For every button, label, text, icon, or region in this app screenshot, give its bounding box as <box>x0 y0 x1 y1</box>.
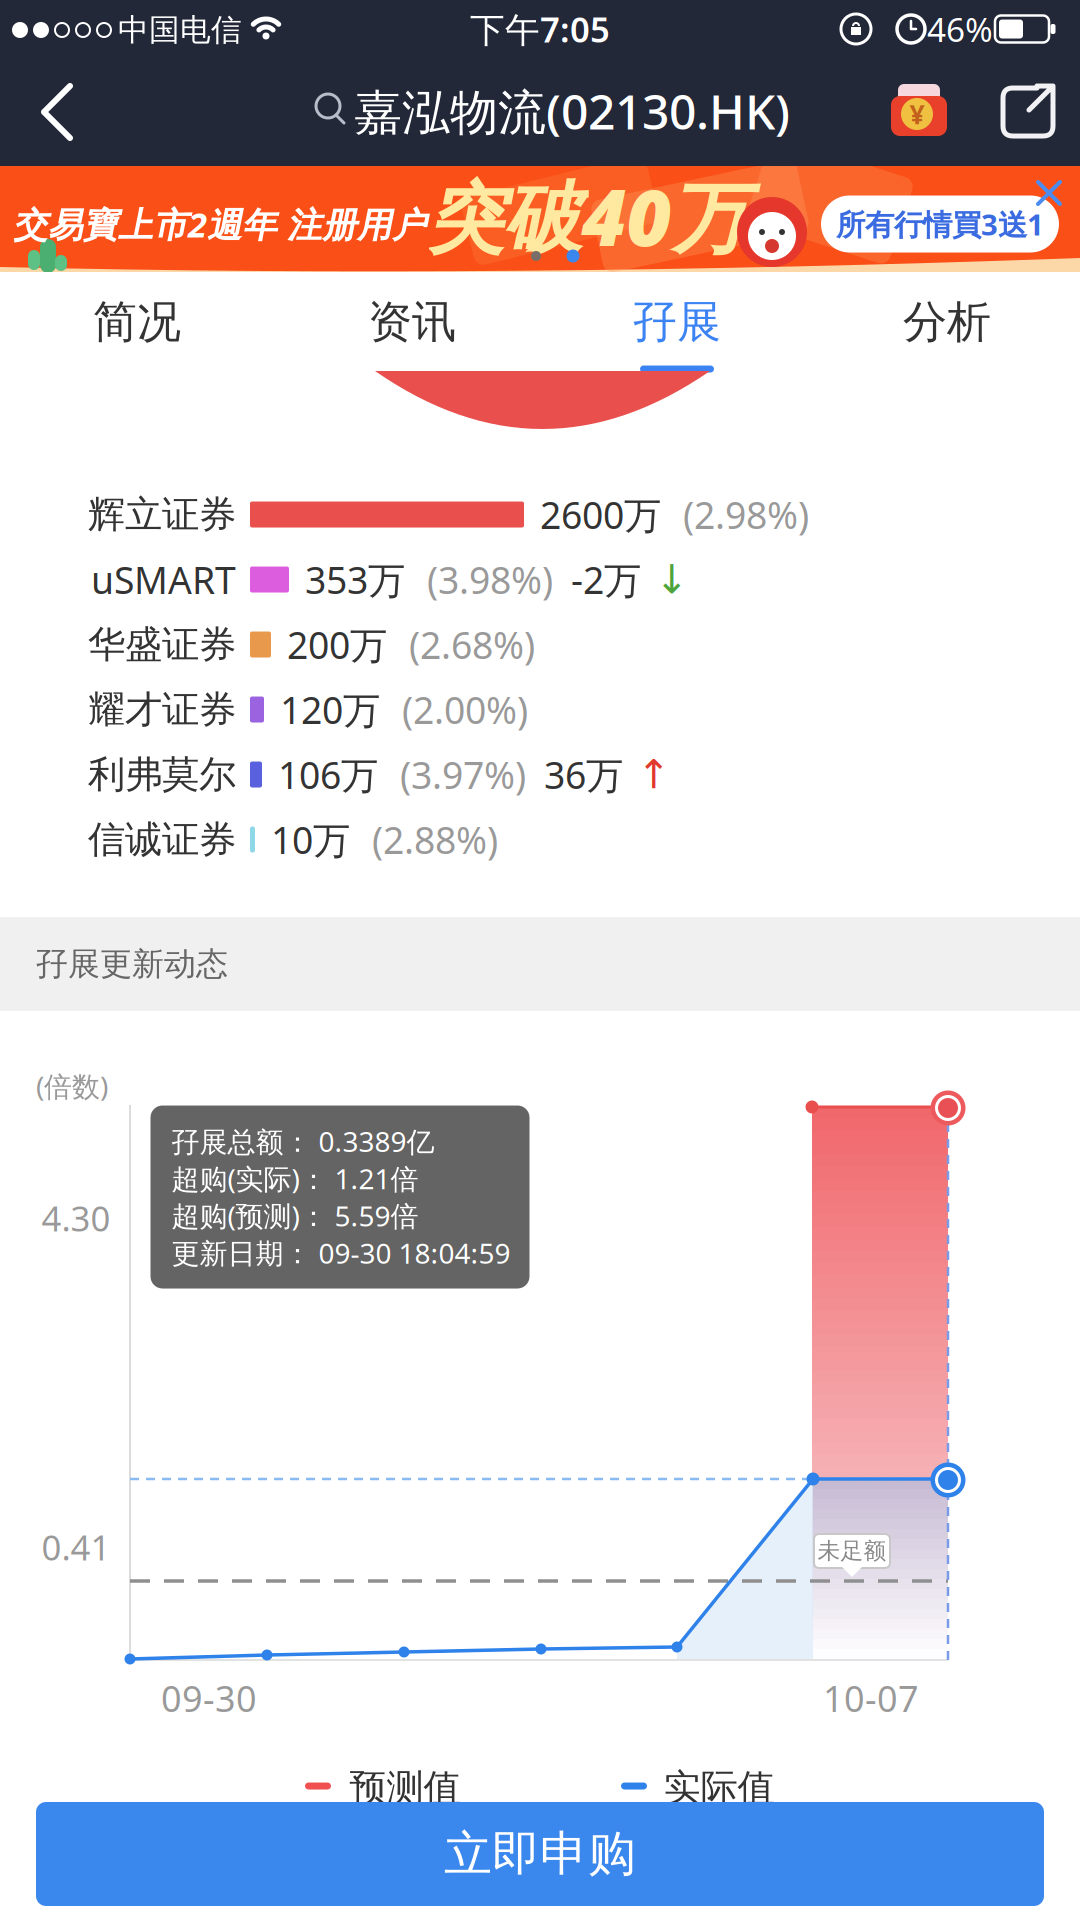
staticText: 突破40万 <box>427 165 748 267</box>
button[interactable]: 资讯 <box>322 277 502 367</box>
staticText: (3.98%) <box>427 555 553 604</box>
button[interactable] <box>28 72 88 152</box>
staticText: 10-07 <box>823 1674 919 1722</box>
staticText: 46% <box>927 7 993 51</box>
staticText: (倍数) <box>36 1067 108 1105</box>
staticText: 09-30 <box>161 1674 257 1722</box>
staticText: 所有行情買3送1 <box>836 204 1044 243</box>
staticText: 10万 <box>271 815 350 864</box>
button[interactable] <box>1001 84 1055 138</box>
staticText: 2600万 <box>540 490 661 539</box>
staticText: (2.68%) <box>409 620 535 669</box>
staticText: (3.97%) <box>400 750 526 799</box>
staticText: 未足额 <box>817 1537 886 1565</box>
staticText: 信诚证券 <box>88 817 236 862</box>
staticText: 106万 <box>278 750 378 799</box>
staticText: 华盛证券 <box>88 622 236 667</box>
staticText: -2万 <box>571 555 641 604</box>
staticText: 36万 <box>544 750 623 799</box>
staticText: 立即申购 <box>444 1824 636 1883</box>
staticText: ↓ <box>655 557 689 602</box>
staticText: 嘉泓物流(02130.HK) <box>354 79 790 143</box>
staticText: 实际值 <box>663 1765 774 1811</box>
button[interactable]: ¥ <box>891 82 947 138</box>
staticText: 资讯 <box>368 295 456 349</box>
staticText: (2.00%) <box>402 685 528 734</box>
staticText: 更新日期： 09-30 18:04:59 <box>171 1234 510 1271</box>
staticText: ↑ <box>637 752 671 797</box>
staticText: 下午7:05 <box>470 6 610 52</box>
staticText: 超购(实际)： 1.21倍 <box>171 1160 418 1197</box>
staticText: 200万 <box>287 620 387 669</box>
staticText: 预测值 <box>349 1765 460 1811</box>
button[interactable] <box>315 94 347 126</box>
button[interactable]: 简况 <box>47 277 227 367</box>
button[interactable]: 交易寶上市2週年 注册用户 <box>0 166 1080 272</box>
staticText: 利弗莫尔 <box>88 752 236 797</box>
staticText: ¥ <box>909 96 924 132</box>
staticText: 交易寶上市2週年 注册用户 <box>13 201 427 247</box>
button[interactable]: 孖展 <box>587 277 767 367</box>
staticText: 耀才证券 <box>88 687 236 732</box>
staticText: 孖展总额： 0.3389亿 <box>171 1123 434 1160</box>
staticText: uSMART <box>91 555 236 604</box>
staticText: 超购(预测)： 5.59倍 <box>171 1197 418 1234</box>
staticText: 0.41 <box>41 1524 110 1570</box>
button[interactable]: 分析 <box>857 277 1037 367</box>
staticText: 120万 <box>280 685 380 734</box>
staticText: 353万 <box>305 555 405 604</box>
staticText: (2.88%) <box>372 815 498 864</box>
staticText: 辉立证券 <box>88 492 236 537</box>
staticText: 孖展 <box>633 295 721 349</box>
button[interactable]: 立即申购 <box>36 1802 1044 1906</box>
staticText: (2.98%) <box>683 490 809 539</box>
staticText: 4.30 <box>41 1195 110 1241</box>
staticText: 孖展更新动态 <box>36 944 228 984</box>
staticText: 分析 <box>903 295 991 349</box>
staticText: 简况 <box>93 295 181 349</box>
staticText: 中国电信 <box>118 11 242 49</box>
button[interactable]: 嘉泓物流(02130.HK) <box>354 79 790 143</box>
